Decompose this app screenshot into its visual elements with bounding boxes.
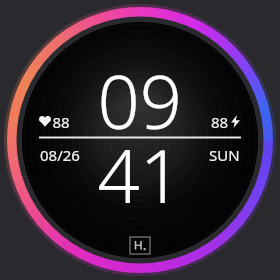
button[interactable]: Watch face, 09:41, Sunday August 26 [0, 0, 280, 280]
